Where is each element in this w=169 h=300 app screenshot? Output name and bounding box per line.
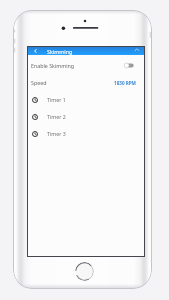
- button[interactable]: Home: [75, 262, 94, 281]
- staticText: Timer 2: [47, 113, 66, 120]
- button[interactable]: Timer 2: [28, 108, 144, 125]
- staticText: 1830 RPM: [114, 80, 136, 86]
- staticText: Skimming: [47, 48, 73, 55]
- staticText: Timer 3: [47, 130, 66, 137]
- staticText: Enable Skimming: [31, 62, 75, 69]
- staticText: Speed: [31, 79, 47, 86]
- button[interactable]: Timer 1: [28, 91, 144, 108]
- button[interactable]: Enable Skimming: [28, 56, 144, 74]
- button[interactable]: Timer 3: [28, 125, 144, 142]
- staticText: Timer 1: [47, 96, 66, 103]
- button[interactable]: Speed: [28, 74, 144, 91]
- button[interactable]: Enable Skimming toggle: [124, 61, 134, 70]
- button[interactable]: More options: [133, 47, 141, 55]
- button[interactable]: Back: [32, 47, 39, 55]
